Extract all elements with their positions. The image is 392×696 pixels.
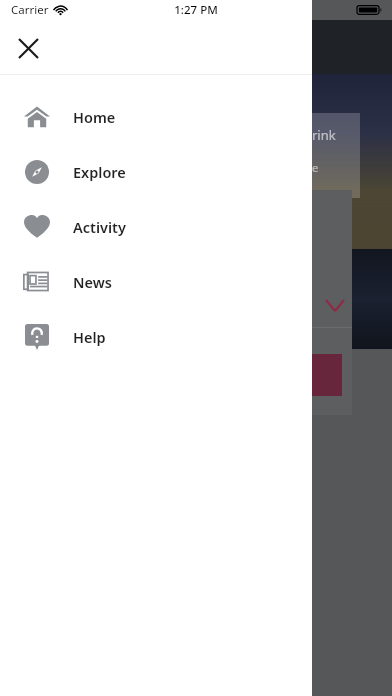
button[interactable]: Home: [0, 89, 312, 144]
staticText: News: [73, 272, 112, 292]
staticText: e: [312, 160, 319, 175]
staticText: 1:27 PM: [174, 2, 218, 18]
staticText: Explore: [73, 162, 126, 182]
staticText: rink: [312, 126, 336, 144]
staticText: Activity: [73, 217, 126, 237]
button[interactable]: Explore: [0, 144, 312, 199]
button[interactable]: Activity: [0, 199, 312, 254]
staticText: Carrier: [11, 2, 49, 18]
button[interactable]: News: [0, 254, 312, 309]
staticText: Help: [73, 327, 106, 347]
staticText: Home: [73, 107, 116, 127]
button[interactable]: Help: [0, 309, 312, 364]
button[interactable]: Close menu: [10, 30, 46, 66]
button[interactable]: Primary action: [292, 354, 342, 396]
